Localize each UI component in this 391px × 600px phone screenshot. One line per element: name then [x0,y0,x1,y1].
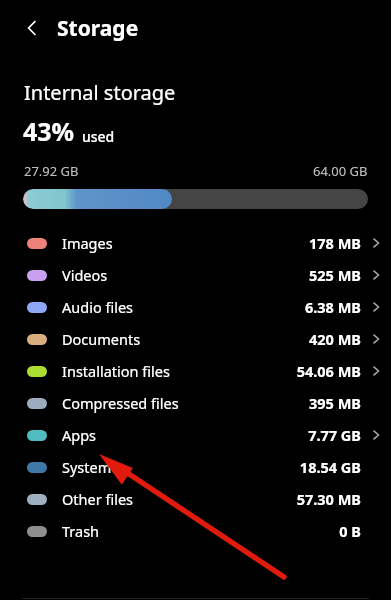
button[interactable]: Audio files [0,291,391,323]
button[interactable]: Other files [0,483,391,515]
staticText: 0 B [339,521,361,541]
staticText: Compressed files [62,393,179,413]
staticText: 43% [23,114,75,148]
staticText: Images [62,233,113,253]
staticText: Other files [62,489,134,509]
staticText: 18.54 GB [299,457,361,477]
button[interactable]: Trash [0,515,391,547]
staticText: Documents [62,329,141,349]
button[interactable]: Back [14,10,50,46]
staticText: 57.30 MB [296,489,361,509]
staticText: 395 MB [309,393,361,413]
button[interactable]: Documents [0,323,391,355]
staticText: 6.38 MB [304,297,361,317]
staticText: Internal storage [24,79,176,106]
staticText: System [62,457,112,477]
staticText: 7.77 GB [308,425,361,445]
staticText: 525 MB [309,265,361,285]
button[interactable]: System [0,451,391,483]
staticText: 64.00 GB [313,162,368,180]
staticText: Installation files [62,361,170,381]
staticText: Storage [57,14,139,43]
button[interactable]: Compressed files [0,387,391,419]
button[interactable]: Installation files [0,355,391,387]
staticText: Audio files [62,297,134,317]
staticText: used [82,127,115,146]
staticText: Trash [62,521,100,541]
button[interactable]: Videos [0,259,391,291]
staticText: 27.92 GB [24,162,79,180]
staticText: 420 MB [309,329,361,349]
button[interactable]: Images [0,227,391,259]
staticText: 54.06 MB [296,361,361,381]
staticText: Videos [62,265,108,285]
button[interactable]: Apps [0,419,391,451]
staticText: 178 MB [309,233,361,253]
staticText: Apps [62,425,97,445]
